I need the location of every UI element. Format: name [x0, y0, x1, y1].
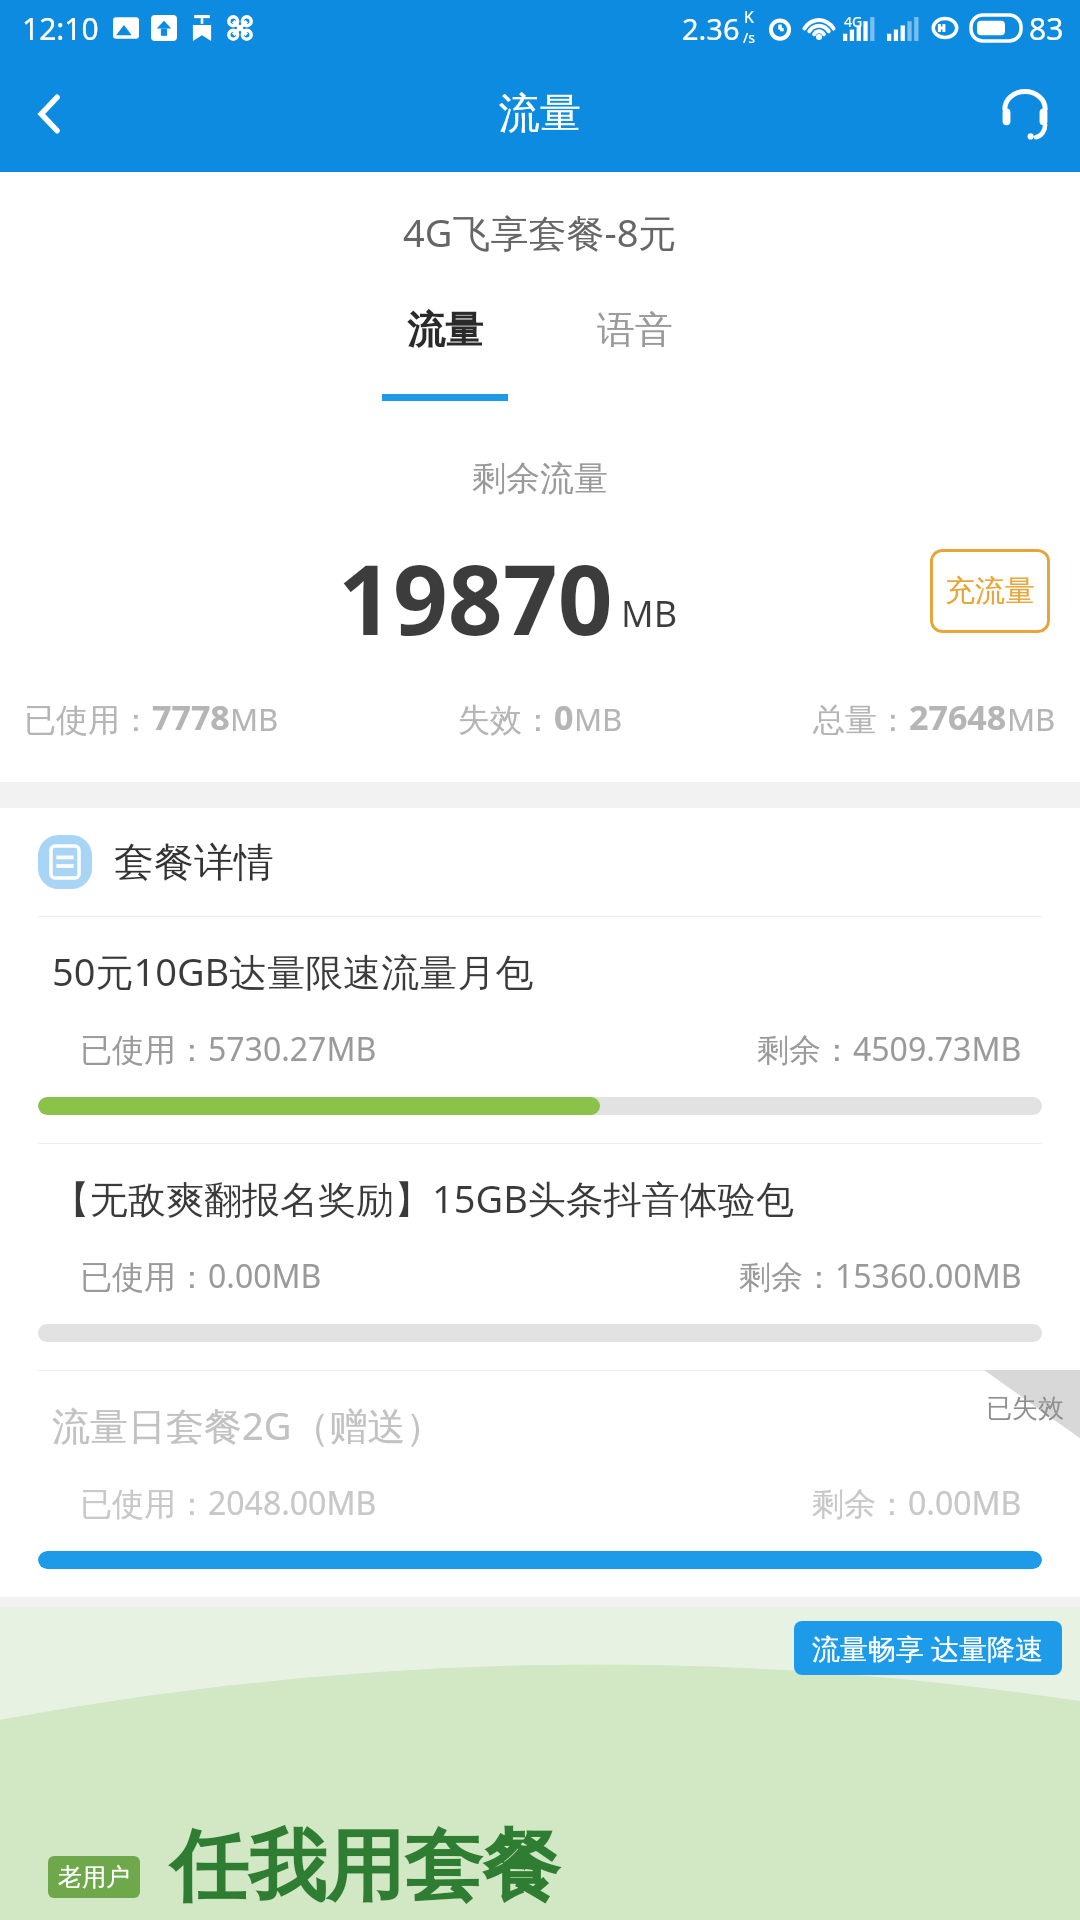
staticText: 流量 [499, 88, 581, 140]
staticText: 4G飞享套餐-8元 [403, 206, 677, 258]
staticText: 19870 [338, 532, 613, 650]
staticText: 剩余：4509.73MB [757, 1027, 1022, 1071]
button[interactable]: Back [0, 64, 100, 164]
button[interactable]: 流量日套餐2G（赠送） [0, 1370, 1080, 1597]
staticText: MB [621, 589, 678, 638]
staticText: 83 [1029, 8, 1064, 49]
staticText: 充流量 [945, 572, 1035, 610]
staticText: MB [574, 698, 623, 740]
staticText: 套餐详情 [114, 837, 274, 887]
staticText: 4G [844, 12, 863, 31]
staticText: 流量 [407, 306, 483, 354]
staticText: MB [1007, 698, 1056, 740]
staticText: 7778 [152, 694, 230, 740]
staticText: 27648 [909, 694, 1007, 740]
staticText: 已使用：2048.00MB [80, 1481, 377, 1525]
staticText: 剩余：15360.00MB [739, 1254, 1022, 1298]
staticText: 已失效 [986, 1392, 1064, 1425]
staticText: 已使用： [24, 700, 152, 740]
button[interactable]: 50元10GB达量限速流量月包 [0, 916, 1080, 1143]
staticText: 语音 [597, 306, 673, 354]
button[interactable]: 【无敌爽翻报名奖励】15GB头条抖音体验包 [0, 1143, 1080, 1370]
staticText: /s [743, 28, 755, 47]
staticText: 失效： [458, 700, 554, 740]
button[interactable]: 流量 [364, 306, 526, 401]
staticText: 剩余：0.00MB [812, 1481, 1022, 1525]
staticText: K [744, 6, 754, 28]
staticText: MB [230, 698, 279, 740]
staticText: 流量日套餐2G（赠送） [52, 1399, 444, 1451]
button[interactable]: 语音 [554, 306, 716, 401]
staticText: 已使用：5730.27MB [80, 1027, 377, 1071]
staticText: 已使用：0.00MB [80, 1254, 322, 1298]
staticText: 0 [554, 694, 574, 740]
button[interactable]: 充流量 [930, 549, 1050, 633]
button[interactable]: Customer service [970, 59, 1080, 169]
button[interactable]: 套餐详情 [38, 808, 1080, 916]
staticText: 流量畅享 达量降速 [812, 1629, 1044, 1667]
staticText: 【无敌爽翻报名奖励】15GB头条抖音体验包 [52, 1172, 794, 1224]
staticText: 老用户 [58, 1862, 130, 1892]
staticText: 50元10GB达量限速流量月包 [52, 945, 534, 997]
staticText: 总量： [813, 700, 909, 740]
staticText: 任我用套餐 [170, 1818, 560, 1916]
staticText: 12:10 [22, 8, 99, 49]
staticText: 2.36 [682, 9, 740, 48]
button[interactable]: 流量畅享 达量降速 [0, 1607, 1080, 1920]
staticText: 剩余流量 [472, 457, 608, 500]
